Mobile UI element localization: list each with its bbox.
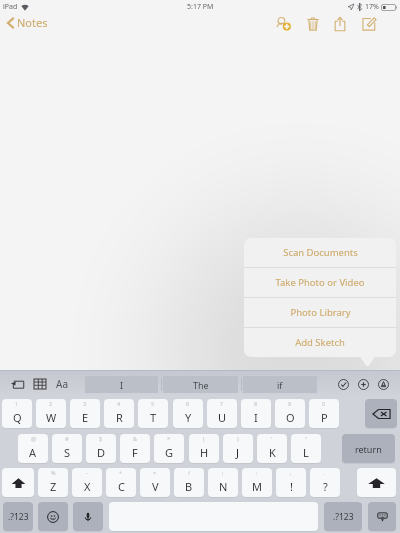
button[interactable]: 2	[36, 399, 66, 428]
staticText: =	[153, 469, 157, 476]
button[interactable]: =	[140, 468, 170, 497]
staticText: U	[218, 410, 227, 425]
button[interactable]: Photo Library	[244, 298, 396, 327]
staticText: G	[165, 445, 174, 460]
staticText: .	[324, 469, 326, 476]
staticText: A	[29, 445, 37, 460]
button[interactable]: 8	[241, 399, 271, 428]
staticText: O	[286, 410, 295, 425]
button[interactable]: Undo	[7, 376, 27, 392]
button[interactable]: Aa	[52, 375, 72, 393]
staticText: Photo Library	[290, 306, 351, 319]
staticText: L	[303, 445, 309, 460]
staticText: 17%	[365, 2, 379, 12]
staticText: )	[237, 435, 239, 442]
staticText: !	[290, 479, 293, 494]
button[interactable]: Scan Documents	[244, 238, 396, 267]
button[interactable]: :	[242, 468, 272, 497]
staticText: *	[167, 435, 171, 442]
button[interactable]: Shift	[2, 468, 34, 497]
staticText: 1	[15, 400, 19, 407]
button[interactable]: Backspace	[365, 399, 397, 428]
button[interactable]: Share	[328, 12, 352, 36]
staticText: T	[150, 410, 157, 425]
button[interactable]: .?123	[324, 502, 362, 531]
button[interactable]: Delete	[301, 12, 325, 36]
button[interactable]: ;	[208, 468, 238, 497]
button[interactable]: .	[310, 468, 340, 497]
staticText: Y	[185, 410, 192, 425]
staticText: The	[193, 379, 209, 391]
button[interactable]: 9	[275, 399, 305, 428]
button[interactable]: Table	[31, 376, 49, 392]
staticText: $	[99, 435, 103, 442]
staticText: C	[118, 479, 125, 494]
button[interactable]: ,	[276, 468, 306, 497]
button[interactable]: Add Sketch	[244, 328, 396, 357]
button[interactable]: I	[85, 376, 158, 393]
button[interactable]: +	[106, 468, 136, 497]
button[interactable]: Compose	[357, 12, 381, 36]
button[interactable]: Take Photo or Video	[244, 268, 396, 297]
staticText: ?	[323, 479, 328, 494]
button[interactable]: 1	[2, 399, 32, 428]
staticText: Q	[13, 410, 22, 425]
staticText: P	[321, 410, 328, 425]
button[interactable]: $	[86, 434, 116, 463]
staticText: "	[305, 435, 308, 442]
button[interactable]: Emoji	[38, 502, 68, 531]
button[interactable]: Notes	[4, 12, 54, 33]
staticText: :	[256, 469, 258, 476]
button[interactable]: Dictate	[73, 502, 103, 531]
staticText: Z	[50, 479, 57, 494]
staticText: .?123	[8, 511, 29, 523]
button[interactable]: 7	[207, 399, 237, 428]
button[interactable]: The	[163, 376, 238, 393]
staticText: Aa	[56, 377, 68, 391]
button[interactable]: /	[174, 468, 204, 497]
button[interactable]: (	[189, 434, 219, 463]
button[interactable]: 6	[173, 399, 203, 428]
staticText: @	[31, 435, 36, 442]
staticText: %	[51, 469, 56, 476]
button[interactable]: Markup	[374, 375, 392, 393]
button[interactable]: Checklist	[334, 375, 352, 393]
staticText: E	[82, 410, 89, 425]
button[interactable]: "	[291, 434, 321, 463]
button[interactable]: @	[18, 434, 48, 463]
button[interactable]: *	[154, 434, 184, 463]
staticText: #	[65, 435, 69, 442]
staticText: S	[64, 445, 71, 460]
staticText: W	[46, 410, 57, 425]
staticText: 3	[83, 400, 87, 407]
button[interactable]: return	[342, 434, 395, 463]
button[interactable]: &	[120, 434, 150, 463]
button[interactable]: %	[38, 468, 68, 497]
button[interactable]: Shift	[357, 468, 396, 497]
staticText: 6	[186, 400, 190, 407]
staticText: /	[188, 469, 191, 476]
staticText: Take Photo or Video	[275, 276, 365, 289]
button[interactable]: '	[257, 434, 287, 463]
button[interactable]: Add	[354, 375, 372, 393]
button[interactable]: if	[243, 376, 317, 393]
staticText: M	[252, 479, 262, 494]
button[interactable]: Add People	[271, 12, 295, 36]
button[interactable]: 4	[104, 399, 134, 428]
button[interactable]: -	[72, 468, 102, 497]
button[interactable]: )	[223, 434, 253, 463]
staticText: ,	[290, 469, 292, 476]
button[interactable]: .?123	[3, 502, 33, 531]
staticText: return	[355, 443, 382, 455]
button[interactable]: 3	[70, 399, 100, 428]
staticText: 8	[254, 400, 258, 407]
button[interactable]: Hide Keyboard	[368, 502, 396, 531]
button[interactable]: 5	[138, 399, 168, 428]
staticText: J	[236, 445, 240, 460]
button[interactable]: 0	[309, 399, 339, 428]
staticText: I	[120, 379, 124, 391]
button[interactable]: #	[52, 434, 82, 463]
staticText: R	[116, 410, 123, 425]
staticText: F	[132, 445, 138, 460]
